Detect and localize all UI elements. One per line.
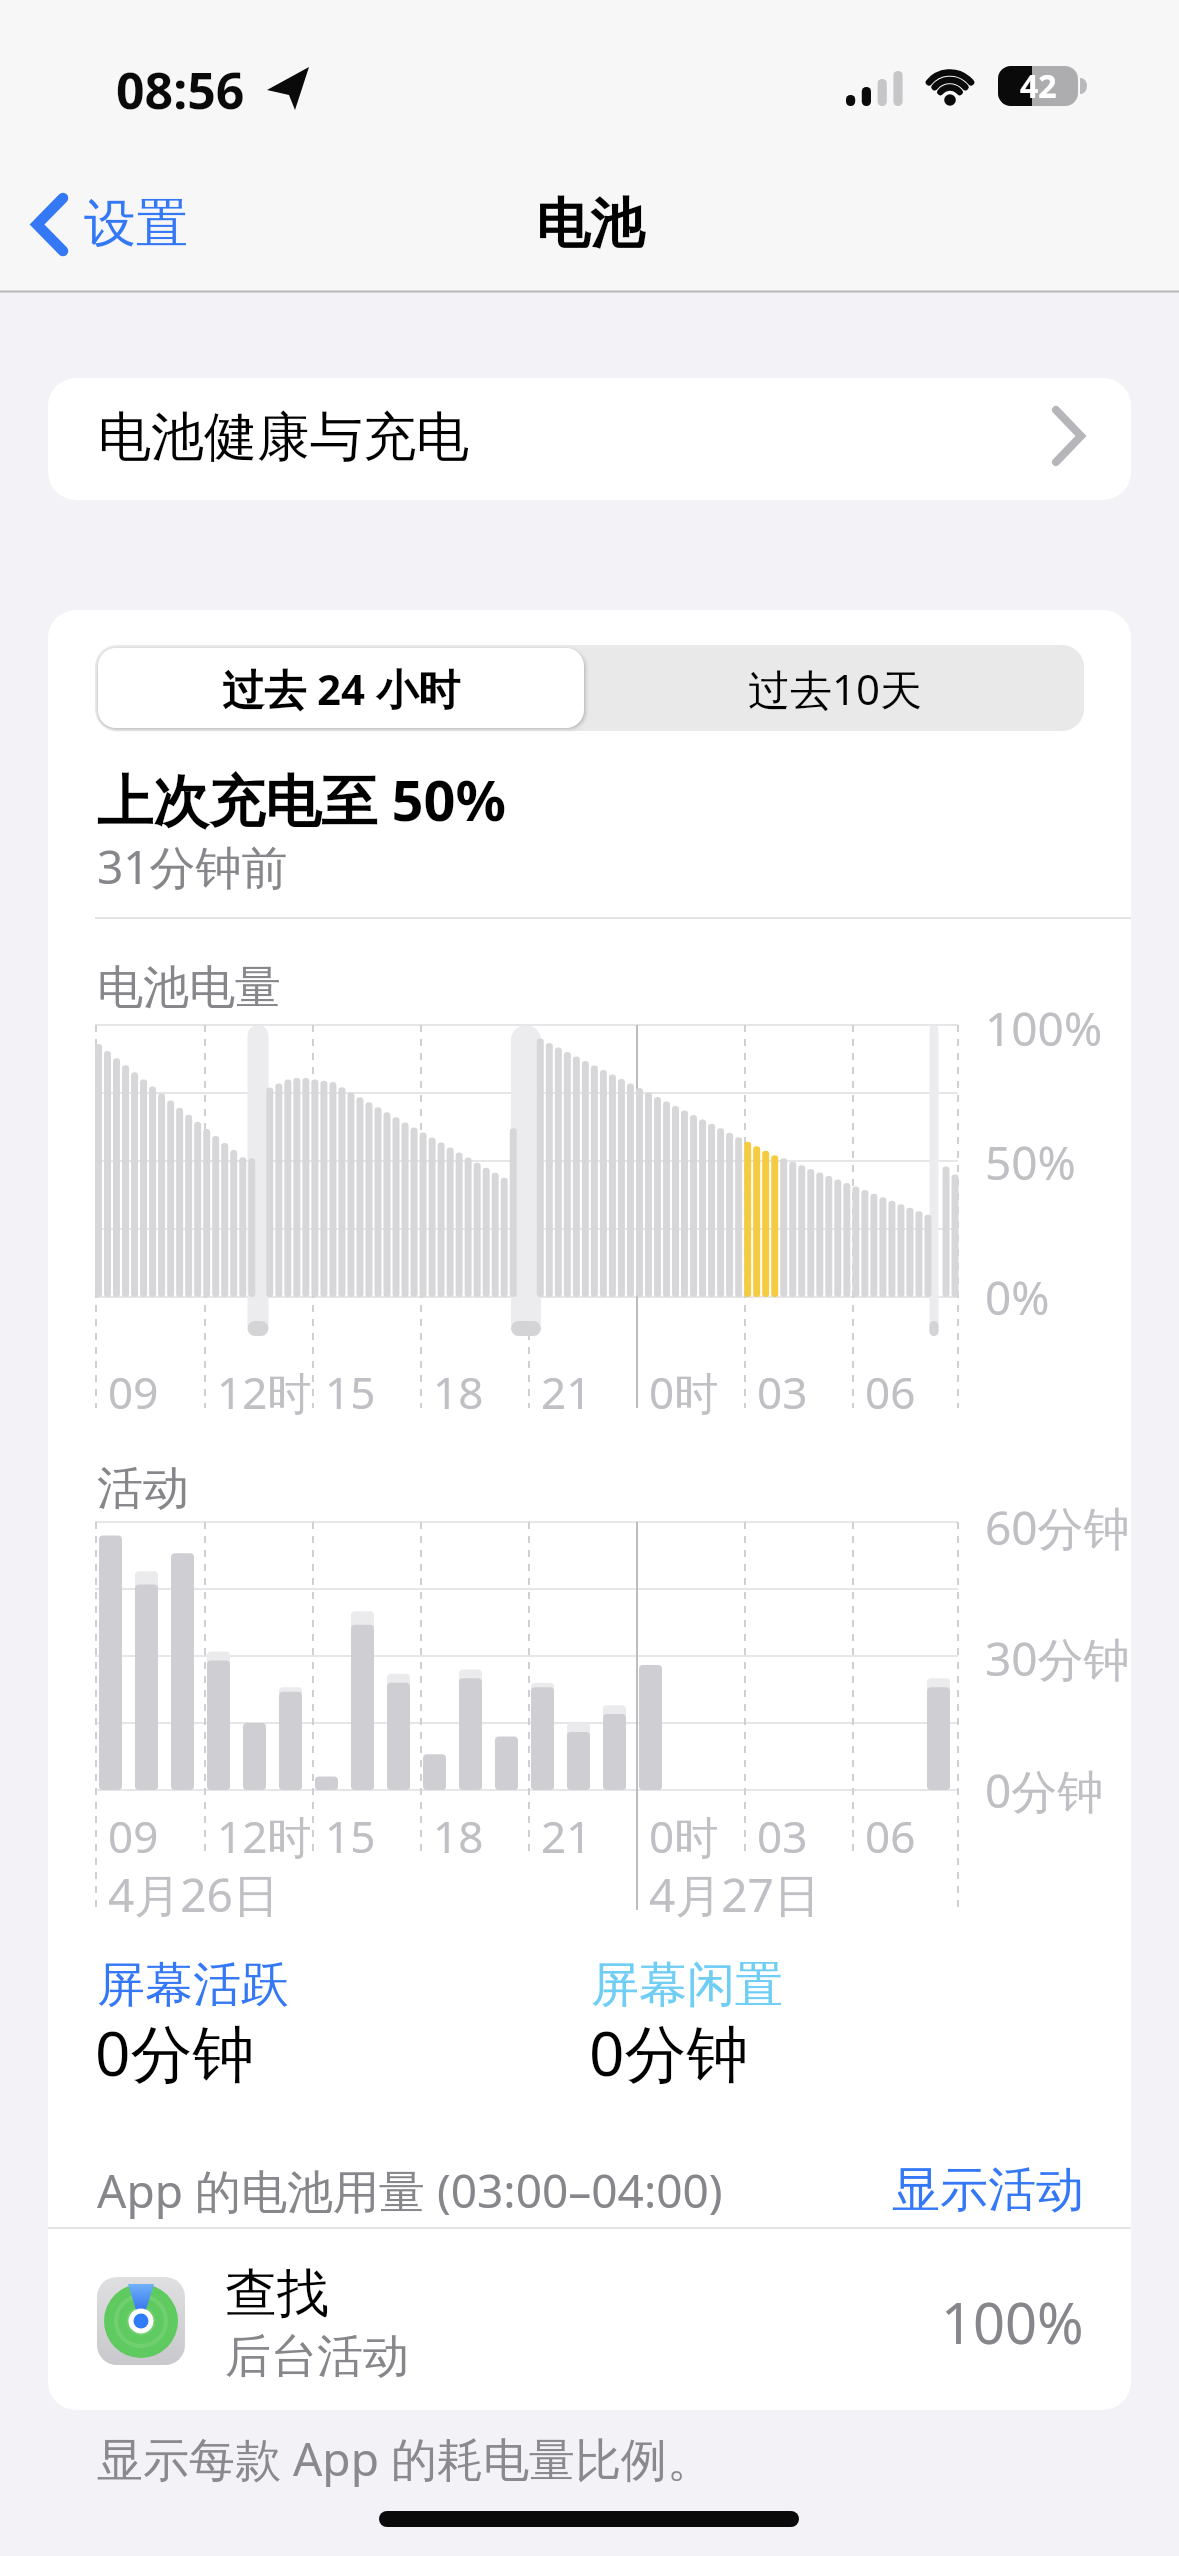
- staticText: 21: [541, 1362, 592, 1422]
- staticText: 屏幕闲置: [591, 1955, 783, 2015]
- button[interactable]: [98, 648, 584, 728]
- staticText: 18: [433, 1362, 484, 1422]
- button[interactable]: 设置: [84, 174, 784, 274]
- staticText: 屏幕活跃: [97, 1955, 289, 2015]
- staticText: 12时: [217, 1806, 312, 1866]
- staticText: 查找: [225, 2261, 329, 2327]
- staticText: App 的电池用量 (03:00–04:00): [97, 2159, 723, 2222]
- staticText: 0分钟: [985, 1759, 1104, 1822]
- staticText: 电池健康与充电: [98, 404, 469, 471]
- staticText: 0时: [649, 1806, 719, 1866]
- staticText: 31分钟前: [97, 835, 288, 898]
- staticText: 03: [757, 1362, 808, 1422]
- staticText: 21: [541, 1806, 592, 1866]
- button[interactable]: [48, 2240, 1131, 2408]
- staticText: 06: [865, 1362, 916, 1422]
- staticText: 活动: [97, 1460, 189, 1518]
- staticText: 电池电量: [97, 959, 281, 1017]
- staticText: 100%: [985, 997, 1103, 1060]
- staticText: 15: [325, 1362, 376, 1422]
- staticText: 0时: [649, 1362, 719, 1422]
- staticText: 显示活动: [892, 2160, 1084, 2220]
- staticText: 过去 24 小时: [222, 660, 460, 717]
- staticText: 12时: [217, 1362, 312, 1422]
- staticText: 08:56: [116, 56, 245, 124]
- button[interactable]: [589, 648, 1081, 728]
- staticText: 0分钟: [95, 2010, 255, 2095]
- staticText: 0%: [985, 1266, 1050, 1329]
- button[interactable]: 显示活动: [684, 2140, 1084, 2240]
- staticText: 设置: [84, 191, 188, 257]
- staticText: 09: [108, 1806, 159, 1866]
- staticText: 50%: [985, 1131, 1076, 1194]
- staticText: 15: [325, 1806, 376, 1866]
- staticText: 后台活动: [225, 2328, 409, 2386]
- staticText: 电池: [536, 190, 644, 258]
- staticText: 18: [433, 1806, 484, 1866]
- staticText: 30分钟: [985, 1627, 1130, 1690]
- staticText: 60分钟: [985, 1496, 1130, 1559]
- staticText: 03: [757, 1806, 808, 1866]
- staticText: 过去10天: [748, 660, 923, 717]
- staticText: 4月27日: [649, 1863, 820, 1926]
- staticText: 100%: [941, 2284, 1084, 2360]
- staticText: 显示每款 App 的耗电量比例。: [97, 2427, 713, 2490]
- staticText: 0分钟: [589, 2010, 749, 2095]
- button[interactable]: [48, 378, 1131, 500]
- staticText: 上次充电至 50%: [97, 761, 507, 837]
- staticText: 42: [1020, 64, 1057, 108]
- staticText: 4月26日: [108, 1863, 279, 1926]
- staticText: 09: [108, 1362, 159, 1422]
- staticText: 06: [865, 1806, 916, 1866]
